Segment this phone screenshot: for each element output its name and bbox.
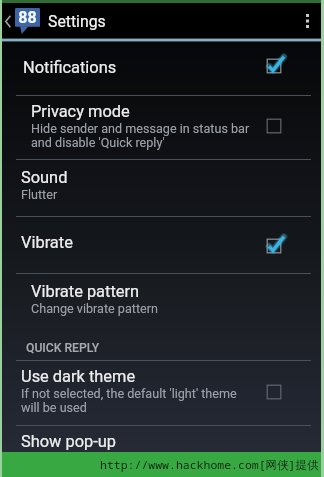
button[interactable]: Show pop-up — [0, 426, 324, 456]
staticText: Settings — [48, 12, 106, 31]
button[interactable]: Notifications — [0, 42, 324, 95]
button[interactable]: Use dark theme — [0, 361, 324, 425]
staticText: Use dark theme — [21, 367, 136, 386]
staticText: Flutter — [21, 187, 58, 202]
button[interactable]: Vibrate pattern — [0, 274, 324, 335]
staticText: Show pop-up — [21, 432, 117, 451]
staticText: Change vibrate pattern — [31, 301, 158, 316]
staticText: Privacy mode — [31, 102, 130, 121]
staticText: 88 — [15, 8, 40, 27]
button[interactable]: More options — [290, 0, 324, 42]
button[interactable]: Privacy mode — [0, 96, 324, 159]
button[interactable]: Sound — [0, 160, 324, 216]
staticText: If not selected, the default 'light' the… — [21, 386, 237, 415]
staticText: Hide sender and message in status bar an… — [31, 121, 250, 150]
staticText: http://www.hackhome.com[网侠]提供 — [100, 457, 319, 473]
button[interactable]: Navigate up — [0, 8, 42, 34]
staticText: Notifications — [23, 58, 117, 77]
staticText: Sound — [21, 168, 68, 187]
staticText: Vibrate pattern — [31, 282, 140, 301]
staticText: QUICK REPLY — [26, 341, 100, 355]
staticText: Vibrate — [21, 233, 73, 252]
button[interactable]: Vibrate — [0, 217, 324, 273]
